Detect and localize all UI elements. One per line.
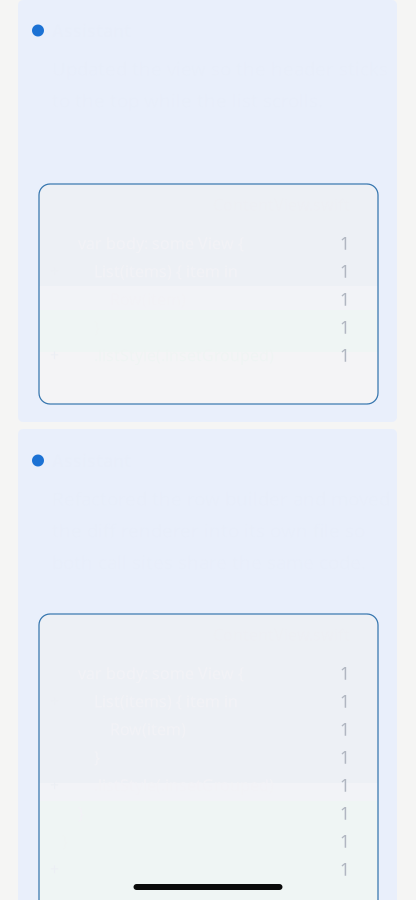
staticText: 1 (340, 315, 350, 338)
staticText: 1 (340, 689, 350, 712)
staticText: 1 (340, 717, 350, 740)
staticText: 1 (340, 857, 350, 880)
staticText: 1 (340, 745, 350, 768)
staticText: 1 (340, 661, 350, 684)
staticText: 1 (340, 287, 350, 310)
staticText: 1 (340, 343, 350, 366)
staticText: 1 (340, 773, 350, 796)
staticText: 1 (340, 801, 350, 824)
staticText: 1 (340, 259, 350, 282)
staticText: 1 (340, 829, 350, 852)
staticText: 1 (340, 231, 350, 254)
